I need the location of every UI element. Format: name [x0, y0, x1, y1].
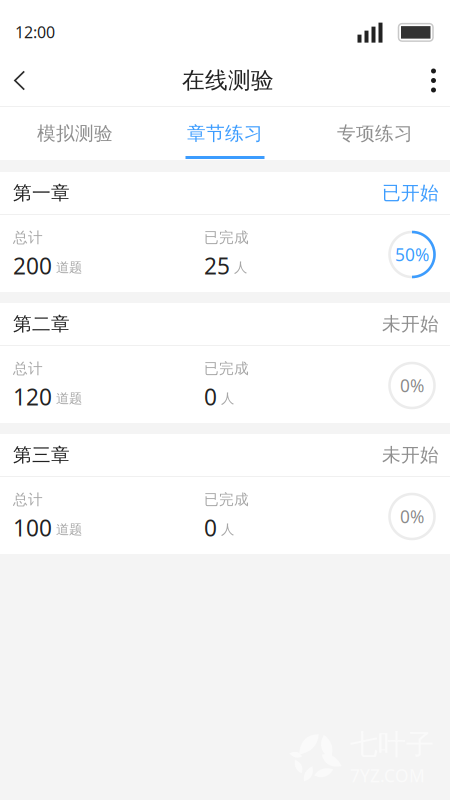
- button[interactable]: 第一章: [0, 172, 450, 292]
- staticText: 120: [13, 382, 52, 412]
- staticText: 人: [221, 521, 234, 538]
- staticText: 在线测验: [182, 67, 274, 94]
- staticText: 专项练习: [337, 122, 413, 145]
- staticText: 道题: [56, 390, 82, 407]
- staticText: 第一章: [13, 181, 70, 204]
- staticText: 12:00: [15, 21, 55, 43]
- staticText: 未开始: [382, 312, 439, 335]
- staticText: 0: [204, 513, 217, 543]
- staticText: 人: [221, 390, 234, 407]
- staticText: 道题: [56, 521, 82, 538]
- staticText: 已完成: [204, 491, 249, 509]
- staticText: 未开始: [382, 443, 439, 466]
- button[interactable]: 第三章: [0, 434, 450, 554]
- button[interactable]: 模拟测验: [0, 107, 150, 160]
- staticText: 模拟测验: [37, 122, 113, 145]
- staticText: 100: [13, 513, 52, 543]
- staticText: 50%: [395, 243, 429, 266]
- button[interactable]: Back: [0, 55, 46, 106]
- staticText: 总计: [13, 360, 43, 378]
- staticText: 人: [234, 259, 247, 276]
- button[interactable]: 章节练习: [150, 107, 300, 160]
- staticText: 第二章: [13, 312, 70, 335]
- staticText: 0%: [400, 374, 424, 397]
- staticText: 总计: [13, 491, 43, 509]
- button[interactable]: 第二章: [0, 303, 450, 423]
- staticText: 25: [204, 251, 230, 281]
- staticText: 0: [204, 382, 217, 412]
- button[interactable]: 专项练习: [300, 107, 450, 160]
- staticText: 200: [13, 251, 52, 281]
- staticText: 第三章: [13, 443, 70, 466]
- staticText: 总计: [13, 229, 43, 247]
- staticText: 道题: [56, 259, 82, 276]
- staticText: 0%: [400, 505, 424, 528]
- button[interactable]: More options: [406, 55, 450, 106]
- staticText: 已完成: [204, 360, 249, 378]
- staticText: 章节练习: [187, 122, 263, 145]
- staticText: 已开始: [382, 181, 439, 204]
- staticText: 已完成: [204, 229, 249, 247]
